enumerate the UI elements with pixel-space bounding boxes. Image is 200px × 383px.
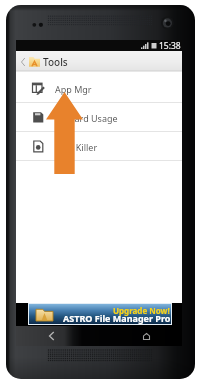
- button[interactable]: App Mgr: [16, 74, 182, 102]
- button[interactable]: Back: [43, 326, 59, 346]
- button[interactable]: Home: [138, 326, 154, 346]
- button[interactable]: Task Killer: [16, 132, 182, 160]
- staticText: Tools: [43, 55, 68, 69]
- button[interactable]: Navigate up: [16, 51, 182, 72]
- staticText: ASTRO File Manager Pro: [63, 312, 171, 324]
- staticText: Upgrade Now!: [113, 305, 170, 316]
- staticText: Task Killer: [55, 141, 98, 153]
- staticText: App Mgr: [55, 83, 92, 95]
- button[interactable]: SD Card Usage: [16, 103, 182, 131]
- other: Navigate up: [16, 51, 29, 72]
- staticText: 15:38: [159, 40, 181, 51]
- staticText: SD Card Usage: [55, 112, 118, 124]
- button[interactable]: Upgrade Now!: [29, 304, 171, 324]
